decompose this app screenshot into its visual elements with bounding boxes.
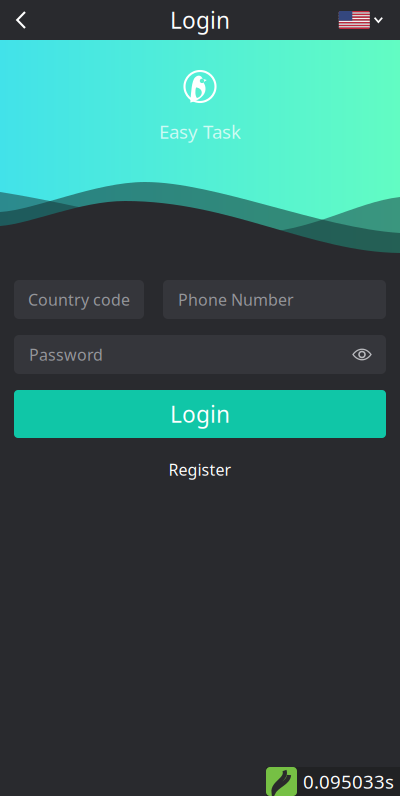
staticText: Login [170, 399, 230, 429]
button[interactable]: Login [14, 390, 386, 438]
staticText: Login [170, 5, 230, 35]
staticText: Easy Task [159, 119, 241, 144]
button[interactable]: Back [0, 0, 40, 40]
staticText: Password [29, 344, 103, 365]
staticText: Country code [28, 289, 130, 310]
staticText: 0.095033s [303, 769, 394, 794]
button[interactable]: Register [154, 453, 245, 486]
button[interactable]: Select language [329, 0, 400, 40]
staticText: Register [168, 459, 231, 480]
staticText: Phone Number [178, 289, 294, 310]
